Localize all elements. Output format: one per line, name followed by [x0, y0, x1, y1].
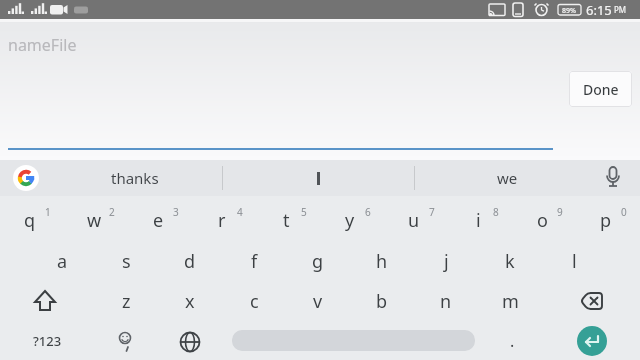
button[interactable] [598, 163, 628, 193]
button[interactable]: q [4, 200, 56, 240]
button[interactable]: z [100, 281, 152, 321]
button[interactable]: f [228, 241, 280, 281]
staticText: w [87, 208, 102, 233]
button[interactable]: n [420, 281, 472, 321]
button[interactable]: r [196, 200, 248, 240]
button[interactable] [566, 281, 618, 321]
button[interactable] [106, 322, 146, 360]
button[interactable] [19, 281, 71, 321]
staticText: o [537, 208, 548, 233]
staticText: m [502, 289, 519, 314]
button[interactable] [170, 322, 210, 360]
staticText: k [505, 249, 515, 274]
staticText: 8 [493, 205, 499, 219]
button[interactable]: d [164, 241, 216, 281]
staticText: 6:15 [586, 1, 612, 19]
button[interactable] [223, 160, 414, 196]
button[interactable]: c [228, 281, 280, 321]
staticText: 0 [621, 205, 627, 219]
button[interactable]: e [132, 200, 184, 240]
staticText: d [184, 249, 196, 274]
button[interactable]: p [580, 200, 632, 240]
button[interactable]: v [292, 281, 344, 321]
button[interactable] [13, 165, 39, 191]
staticText: x [185, 289, 195, 314]
button[interactable]: thanks [48, 160, 222, 196]
staticText: 1 [45, 205, 51, 219]
staticText: q [24, 208, 36, 233]
button[interactable]: Done [569, 71, 632, 107]
button[interactable]: s [100, 241, 152, 281]
button[interactable]: o [516, 200, 568, 240]
staticText: z [122, 289, 131, 314]
staticText: f [251, 249, 258, 274]
staticText: 89% [562, 6, 576, 16]
staticText: 2 [109, 205, 115, 219]
staticText: s [122, 249, 131, 274]
staticText: thanks [111, 168, 159, 188]
staticText: a [57, 249, 68, 274]
staticText: 5 [301, 205, 307, 219]
button[interactable]: b [356, 281, 408, 321]
staticText: b [376, 289, 388, 314]
staticText: we [497, 168, 518, 188]
staticText: 3 [173, 205, 179, 219]
staticText: p [600, 208, 612, 233]
staticText: 9 [557, 205, 563, 219]
button[interactable]: we [415, 160, 600, 196]
staticText: nameFile [8, 34, 77, 56]
staticText: u [408, 208, 420, 233]
staticText: e [153, 208, 164, 233]
staticText: 4 [237, 205, 243, 219]
staticText: . [510, 330, 515, 352]
button[interactable]: h [356, 241, 408, 281]
staticText: r [218, 208, 226, 233]
button[interactable]: x [164, 281, 216, 321]
staticText: v [313, 289, 323, 314]
staticText: 7 [429, 205, 435, 219]
button[interactable]: ?123 [20, 326, 74, 356]
staticText: h [376, 249, 388, 274]
staticText: i [476, 208, 481, 233]
staticText: n [440, 289, 452, 314]
button[interactable]: g [292, 241, 344, 281]
button[interactable]: l [548, 241, 600, 281]
button[interactable]: w [68, 200, 120, 240]
button[interactable]: m [484, 281, 536, 321]
staticText: l [572, 249, 577, 274]
button[interactable]: j [420, 241, 472, 281]
button[interactable]: k [484, 241, 536, 281]
staticText: c [250, 289, 259, 314]
button[interactable]: u [388, 200, 440, 240]
button[interactable]: t [260, 200, 312, 240]
button[interactable]: i [452, 200, 504, 240]
staticText: g [312, 249, 324, 274]
button[interactable]: . [496, 326, 528, 356]
staticText: Done [583, 80, 619, 99]
staticText: y [345, 208, 355, 233]
staticText: j [444, 249, 449, 274]
staticText: PM [614, 4, 627, 15]
staticText: ?123 [33, 332, 62, 350]
staticText: t [283, 208, 290, 233]
staticText: 6 [365, 205, 371, 219]
button[interactable]: y [324, 200, 376, 240]
button[interactable]: a [36, 241, 88, 281]
button[interactable] [577, 326, 607, 356]
